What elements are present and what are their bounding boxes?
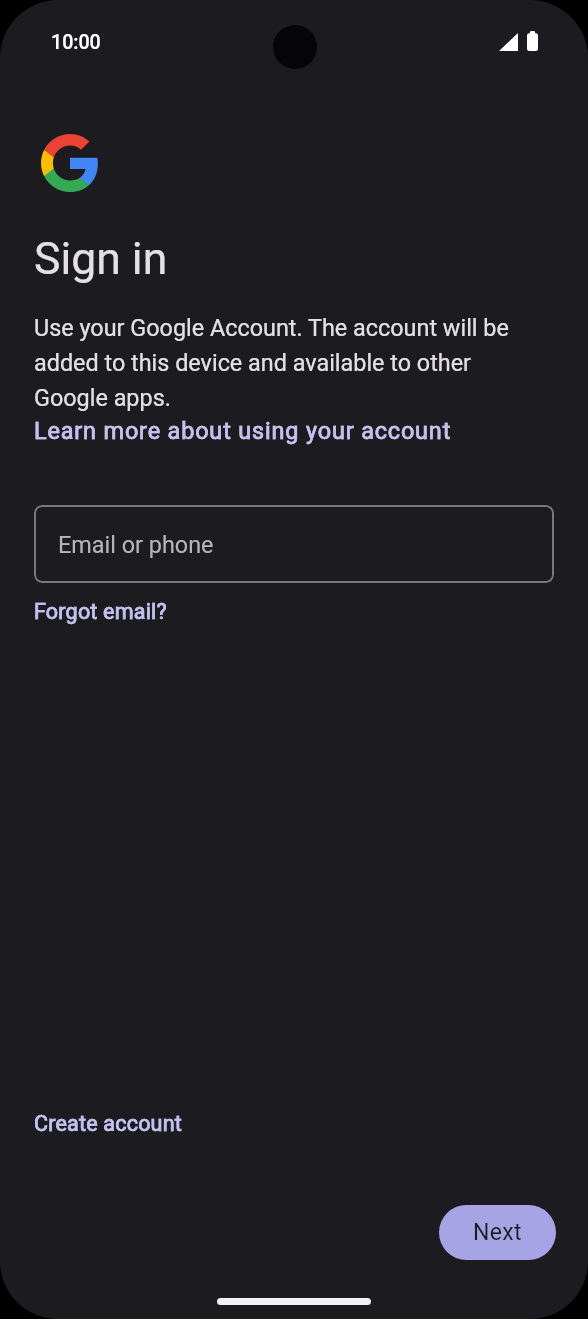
- staticText: Create account: [34, 1108, 182, 1137]
- button[interactable]: Email or phone: [34, 505, 554, 583]
- staticText: Email or phone: [58, 531, 214, 558]
- button[interactable]: Learn more about using your account: [34, 414, 452, 446]
- staticText: Forgot email?: [34, 596, 167, 625]
- other: Mobile signal: [499, 33, 518, 51]
- staticText: Learn more about using your account: [34, 414, 452, 446]
- staticText: Learn more about using your account: [34, 414, 452, 446]
- staticText: Use your Google Account. The account wil…: [34, 308, 509, 413]
- staticText: 10:00: [51, 30, 101, 54]
- other: Battery full: [527, 31, 538, 51]
- other: Google: [41, 134, 99, 192]
- staticText: Next: [473, 1219, 522, 1246]
- button[interactable]: Create account: [34, 1108, 182, 1137]
- staticText: Sign in: [34, 233, 168, 285]
- button[interactable]: Forgot email?: [34, 596, 167, 625]
- staticText: Forgot email?: [34, 596, 167, 625]
- staticText: Create account: [34, 1108, 182, 1137]
- button[interactable]: Next: [439, 1205, 556, 1260]
